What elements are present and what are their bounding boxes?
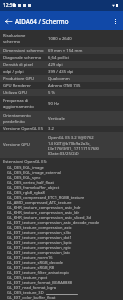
- staticText: 3.2: [48, 126, 54, 132]
- staticText: GL_EXT_texture_sRGB_R8: [7, 265, 55, 270]
- staticText: xdpi / ydpi: [3, 69, 24, 75]
- staticText: GL_OES_texture_3D: [7, 290, 44, 295]
- button[interactable]: GPU Renderer: [0, 82, 123, 89]
- staticText: Produttore GPU: [3, 76, 35, 82]
- staticText: Densità di pixel: [3, 62, 34, 68]
- button[interactable]: Dimensioni schermo: [0, 47, 123, 54]
- staticText: GL_OES_EGL_sync: [7, 175, 41, 180]
- button[interactable]: Frequenza di aggiornamento: [0, 96, 123, 111]
- staticText: Dimensioni schermo: [3, 48, 44, 54]
- staticText: Risoluzione schermo: [3, 33, 26, 44]
- staticText: 12:59: [3, 2, 16, 9]
- staticText: GL_KHR_texture_compression_astc_sliced_3…: [7, 215, 92, 220]
- staticText: GL_EXT_texture_compression_s3tc: [7, 230, 72, 235]
- staticText: OpenGL ES 3.2 V@0762 14 (GIT@b70b9a2a3c,…: [48, 135, 99, 156]
- staticText: GL_OES_rgb8_rgba8: [7, 190, 45, 195]
- staticText: GL_EXT_texture_norm16: [7, 255, 53, 260]
- staticText: GL_OES_texture_npot: [7, 275, 48, 280]
- button[interactable]: More options: [107, 13, 123, 29]
- staticText: GL_EXT_read_format_bgra: [7, 285, 57, 290]
- button[interactable]: Risoluzione schermo: [0, 30, 123, 47]
- button[interactable]: Orientamento predefinito: [0, 111, 123, 126]
- button[interactable]: Densità di pixel: [0, 61, 123, 68]
- button[interactable]: Versione OpenGL ES: [0, 126, 123, 132]
- staticText: GL_EXT_texture_filter_anisotropic: [7, 270, 70, 275]
- button[interactable]: Produttore GPU: [0, 75, 123, 82]
- staticText: 5 %: [48, 90, 55, 96]
- staticText: GL_OES_compressed_ETC1_RGB8_texture: [7, 195, 85, 200]
- staticText: GL_EXT_texture_compression_dxt1: [7, 235, 72, 240]
- staticText: GL_OES_EGL_image: [7, 165, 44, 170]
- button[interactable]: Versione GPU: [0, 132, 123, 158]
- staticText: Diagonale schermo: [3, 55, 42, 61]
- staticText: 69 mm × 154 mm: [48, 48, 83, 54]
- staticText: GL_EXT_texture_sRGB_decode: [7, 260, 64, 265]
- staticText: AIDA64 / Schermo: [15, 17, 69, 25]
- staticText: Estensioni OpenGL ES:: [3, 159, 48, 165]
- staticText: Adreno (TM) 735: [48, 83, 81, 89]
- staticText: GL_EXT_color_buffer_float: [7, 295, 56, 300]
- staticText: GL_AMD_compressed_ATC_texture: [7, 200, 72, 205]
- staticText: Versione OpenGL ES: [3, 126, 43, 132]
- staticText: GL_EXT_texture_compression_rgtc: [7, 245, 71, 250]
- staticText: 1080 x 2640: [48, 36, 72, 42]
- staticText: GL_KHR_texture_compression_astc_ldr: [7, 210, 80, 215]
- staticText: Qualcomm: [48, 76, 70, 82]
- staticText: GL_EXT_texture_compression_latc: [7, 250, 71, 255]
- button[interactable]: Back: [0, 13, 16, 29]
- button[interactable]: Utilizzo GPU: [0, 89, 123, 96]
- staticText: GL_OES_texture_compression_astc: [7, 225, 72, 230]
- staticText: 6,64 pollici: [48, 55, 69, 61]
- staticText: GL_EXT_texture_compression_bptc: [7, 240, 72, 245]
- staticText: GL_OES_EGL_image_external: [7, 170, 62, 175]
- staticText: GL_EXT_texture_compression_astc_decode_m…: [7, 220, 100, 225]
- staticText: 399 / 435 dpi: [48, 69, 74, 75]
- staticText: 429 dpi: [48, 62, 63, 68]
- staticText: Frequenza di aggiornamento: [3, 98, 34, 109]
- staticText: Versione GPU: [3, 142, 30, 148]
- staticText: GL_OES_vertex_half_float: [7, 180, 54, 185]
- staticText: Verticale: [48, 116, 65, 122]
- button[interactable]: xdpi / ydpi: [0, 68, 123, 75]
- staticText: GL_OES_framebuffer_object: [7, 185, 60, 190]
- staticText: GL_KHR_texture_compression_astc_hdr: [7, 205, 81, 210]
- staticText: Utilizzo GPU: [3, 90, 28, 96]
- staticText: 90 Hz: [48, 101, 59, 107]
- staticText: GPU Renderer: [3, 83, 31, 89]
- button[interactable]: Diagonale schermo: [0, 54, 123, 61]
- staticText: GL_EXT_texture_format_BGRA8888: [7, 280, 72, 285]
- staticText: Orientamento predefinito: [3, 113, 31, 124]
